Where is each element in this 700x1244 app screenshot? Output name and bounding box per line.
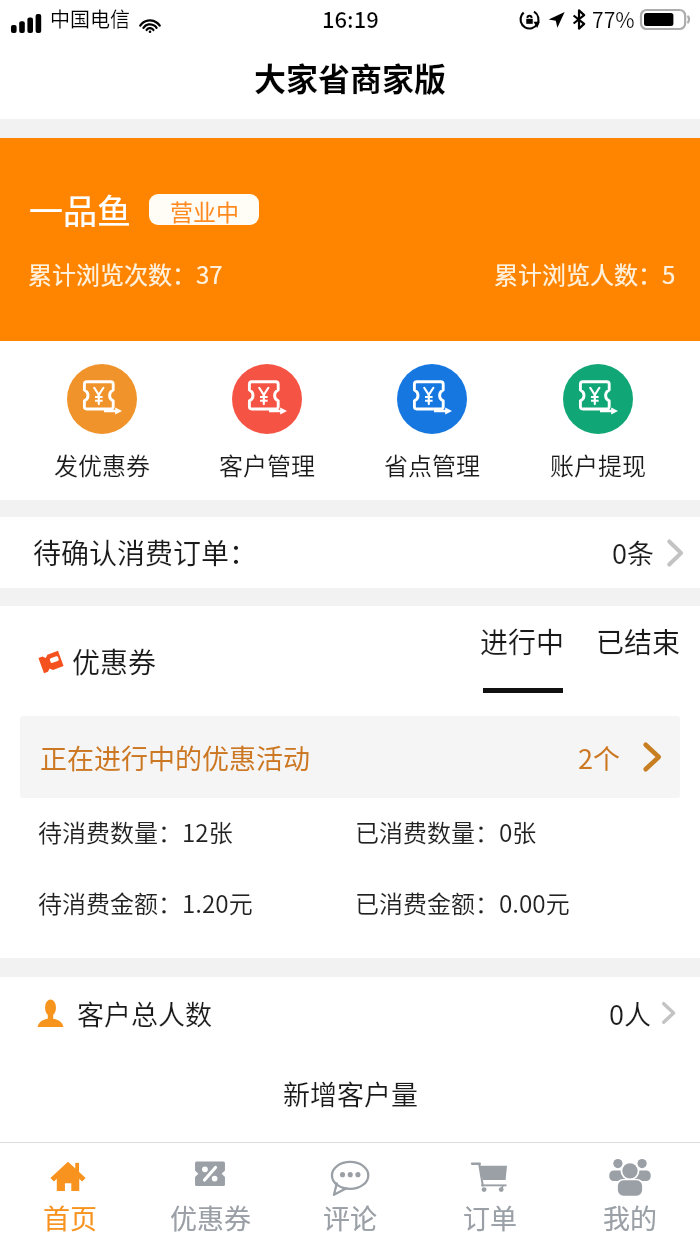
staticText: 订单 — [463, 1198, 517, 1237]
button[interactable]: 我的 — [560, 1143, 700, 1244]
staticText: 0.00元 — [499, 885, 570, 920]
staticText: 累计浏览人数：5 — [494, 256, 676, 291]
staticText: 首页 — [43, 1198, 97, 1237]
button[interactable]: 进行中 — [480, 621, 565, 693]
staticText: 大家省商家版 — [254, 54, 447, 100]
staticText: 营业中 — [170, 194, 239, 225]
button[interactable]: 省点管理 — [349, 341, 515, 500]
staticText: 待消费数量： — [38, 814, 182, 849]
staticText: 待消费金额： — [38, 885, 182, 920]
button[interactable]: 优惠券 — [140, 1143, 280, 1244]
button[interactable]: 账户提现 — [515, 341, 681, 500]
staticText: 一品鱼 — [29, 185, 131, 234]
staticText: 客户总人数 — [77, 994, 212, 1033]
staticText: 正在进行中的优惠活动 — [40, 738, 310, 777]
button[interactable]: 评论 — [280, 1143, 420, 1244]
staticText: 0人 — [609, 994, 651, 1033]
button[interactable]: 发优惠券 — [19, 341, 184, 500]
staticText: 1.20元 — [182, 885, 253, 920]
staticText: 账户提现 — [550, 447, 646, 482]
staticText: 2个 — [578, 738, 620, 777]
button[interactable]: 营业中 — [149, 194, 259, 225]
button[interactable]: 客户管理 — [184, 341, 349, 500]
staticText: 已结束 — [596, 621, 681, 662]
staticText: 优惠券 — [72, 641, 157, 682]
staticText: 累计浏览次数：37 — [28, 256, 223, 291]
staticText: 待确认消费订单： — [33, 532, 258, 573]
staticText: 优惠券 — [170, 1198, 251, 1237]
staticText: 客户管理 — [219, 447, 315, 482]
staticText: 77% — [592, 4, 635, 34]
staticText: 评论 — [323, 1198, 377, 1237]
staticText: 已消费金额： — [355, 885, 499, 920]
button[interactable]: 客户总人数 — [0, 977, 700, 1049]
button[interactable]: 待确认消费订单： — [0, 517, 700, 588]
staticText: 已消费数量： — [355, 814, 499, 849]
staticText: 进行中 — [480, 621, 565, 662]
button[interactable]: 已结束 — [596, 621, 700, 662]
button[interactable]: 订单 — [420, 1143, 560, 1244]
button[interactable]: 首页 — [0, 1143, 140, 1244]
staticText: 16:19 — [322, 2, 379, 34]
staticText: 0条 — [612, 533, 654, 572]
staticText: 0张 — [499, 814, 537, 849]
staticText: 中国电信 — [50, 4, 130, 33]
staticText: 发优惠券 — [54, 447, 150, 482]
staticText: 12张 — [182, 814, 233, 849]
staticText: 省点管理 — [384, 447, 480, 482]
button[interactable]: 正在进行中的优惠活动 — [20, 716, 680, 798]
staticText: 新增客户量 — [283, 1074, 418, 1113]
staticText: 我的 — [603, 1198, 657, 1237]
